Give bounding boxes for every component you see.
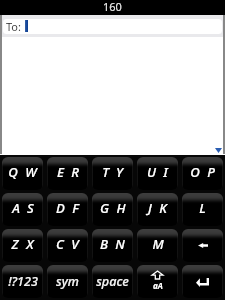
staticText: !?123 [8,273,38,290]
staticText: I [163,163,168,181]
button[interactable]: !?123 [2,265,43,298]
button[interactable]: M [137,229,178,262]
staticText: L [199,199,206,217]
staticText: S [27,199,34,217]
button[interactable]: Shift [137,265,178,298]
staticText: To: [6,19,21,34]
staticText: F [72,199,79,217]
button[interactable]: G [92,193,133,226]
staticText: space [96,273,129,290]
button[interactable]: O [182,157,223,190]
staticText: H [116,199,126,217]
button[interactable]: To: [3,19,222,34]
staticText: aA [153,280,163,291]
staticText: X [26,235,34,253]
staticText: E [57,163,64,181]
staticText: Z [11,235,19,253]
staticText: P [207,163,215,181]
staticText: 160 [103,0,122,14]
button[interactable]: E [47,157,88,190]
staticText: B [100,235,108,253]
button[interactable]: Z [2,229,43,262]
staticText: G [100,199,109,217]
button[interactable]: L [182,193,223,226]
staticText: A [12,199,20,217]
staticText: T [102,163,109,181]
button[interactable]: D [47,193,88,226]
staticText: R [71,163,79,181]
button[interactable]: Enter [182,265,223,298]
button[interactable]: Q [2,157,43,190]
button[interactable]: A [2,193,43,226]
button[interactable]: J [137,193,178,226]
button[interactable]: C [47,229,88,262]
button[interactable]: B [92,229,133,262]
staticText: Q [8,163,18,181]
button[interactable]: U [137,157,178,190]
staticText: W [25,163,37,181]
staticText: M [152,235,164,253]
staticText: sym [56,273,79,290]
staticText: J [148,199,152,217]
button[interactable]: Backspace [182,229,223,262]
staticText: O [190,163,200,181]
button[interactable]: T [92,157,133,190]
staticText: V [71,235,79,253]
staticText: U [147,163,156,181]
staticText: N [115,235,125,253]
button[interactable]: sym [47,265,88,298]
other: Scroll down [215,148,222,153]
staticText: K [159,199,167,217]
staticText: C [56,235,64,253]
button[interactable]: space [92,265,133,298]
staticText: Y [116,163,123,181]
staticText: D [56,199,65,217]
